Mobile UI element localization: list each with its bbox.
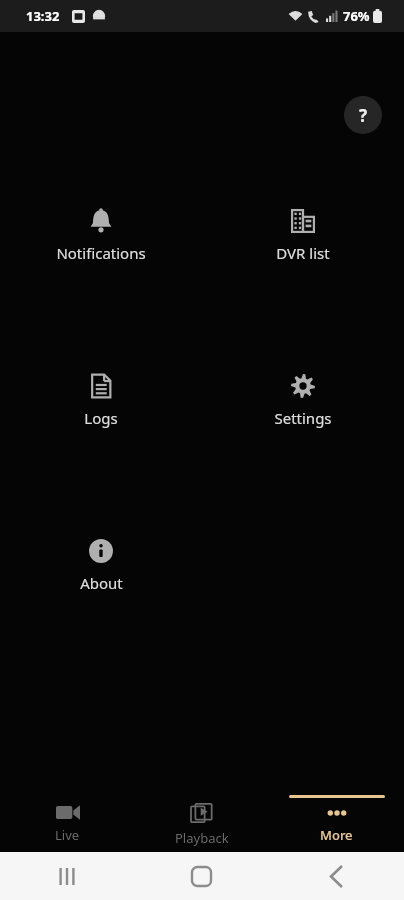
button[interactable]: Settings bbox=[202, 367, 404, 434]
button[interactable]: Home bbox=[134, 852, 269, 900]
staticText: Notifications bbox=[56, 243, 146, 263]
button[interactable]: DVR list bbox=[202, 202, 404, 269]
staticText: Settings bbox=[274, 408, 332, 428]
button[interactable]: Help bbox=[344, 96, 382, 134]
staticText: 13:32 bbox=[26, 7, 60, 25]
button[interactable]: Back bbox=[269, 852, 404, 900]
button[interactable]: Recent apps bbox=[0, 852, 134, 900]
button[interactable]: Notifications bbox=[0, 202, 202, 269]
button[interactable]: Live bbox=[0, 790, 134, 852]
staticText: ? bbox=[359, 104, 368, 127]
button[interactable]: Playback bbox=[134, 790, 269, 852]
staticText: More bbox=[320, 826, 353, 844]
staticText: Playback bbox=[175, 829, 229, 847]
button[interactable]: More bbox=[269, 790, 404, 852]
staticText: 76% bbox=[343, 7, 370, 25]
button[interactable]: Logs bbox=[0, 367, 202, 434]
staticText: About bbox=[80, 573, 123, 593]
staticText: DVR list bbox=[276, 243, 330, 263]
button[interactable]: About bbox=[0, 532, 202, 599]
staticText: Logs bbox=[84, 408, 118, 428]
staticText: Live bbox=[55, 826, 80, 844]
